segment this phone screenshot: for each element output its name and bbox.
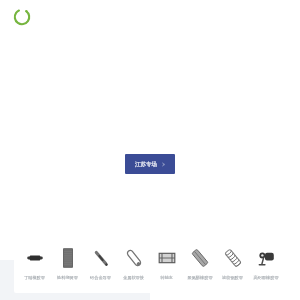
button[interactable]: Logo xyxy=(12,7,32,27)
staticText: 聚氨酯橡胶管 xyxy=(187,275,213,280)
button[interactable]: 波纹钢胶管 xyxy=(216,231,249,293)
button[interactable]: 金属软管接 xyxy=(117,231,150,293)
button[interactable]: 铝合金导管 xyxy=(84,231,117,293)
staticText: 换料绕簧管 xyxy=(57,275,78,280)
staticText: 江苏专场 xyxy=(135,161,157,168)
staticText: 丁睛橡胶管 xyxy=(24,275,45,280)
staticText: 波纹钢胶管 xyxy=(222,275,243,280)
staticText: 高铝圆橡胶管 xyxy=(253,275,279,280)
staticText: 转轴支 xyxy=(160,275,173,280)
button[interactable]: 江苏专场 xyxy=(125,154,175,174)
button[interactable]: 高铝圆橡胶管 xyxy=(249,231,282,293)
button[interactable]: 丁睛橡胶管 xyxy=(18,231,51,293)
button[interactable]: 聚氨酯橡胶管 xyxy=(183,231,216,293)
staticText: 铝合金导管 xyxy=(90,275,111,280)
staticText: 金属软管接 xyxy=(123,275,144,280)
button[interactable]: 转轴支 xyxy=(150,231,183,293)
button[interactable]: 换料绕簧管 xyxy=(51,231,84,293)
